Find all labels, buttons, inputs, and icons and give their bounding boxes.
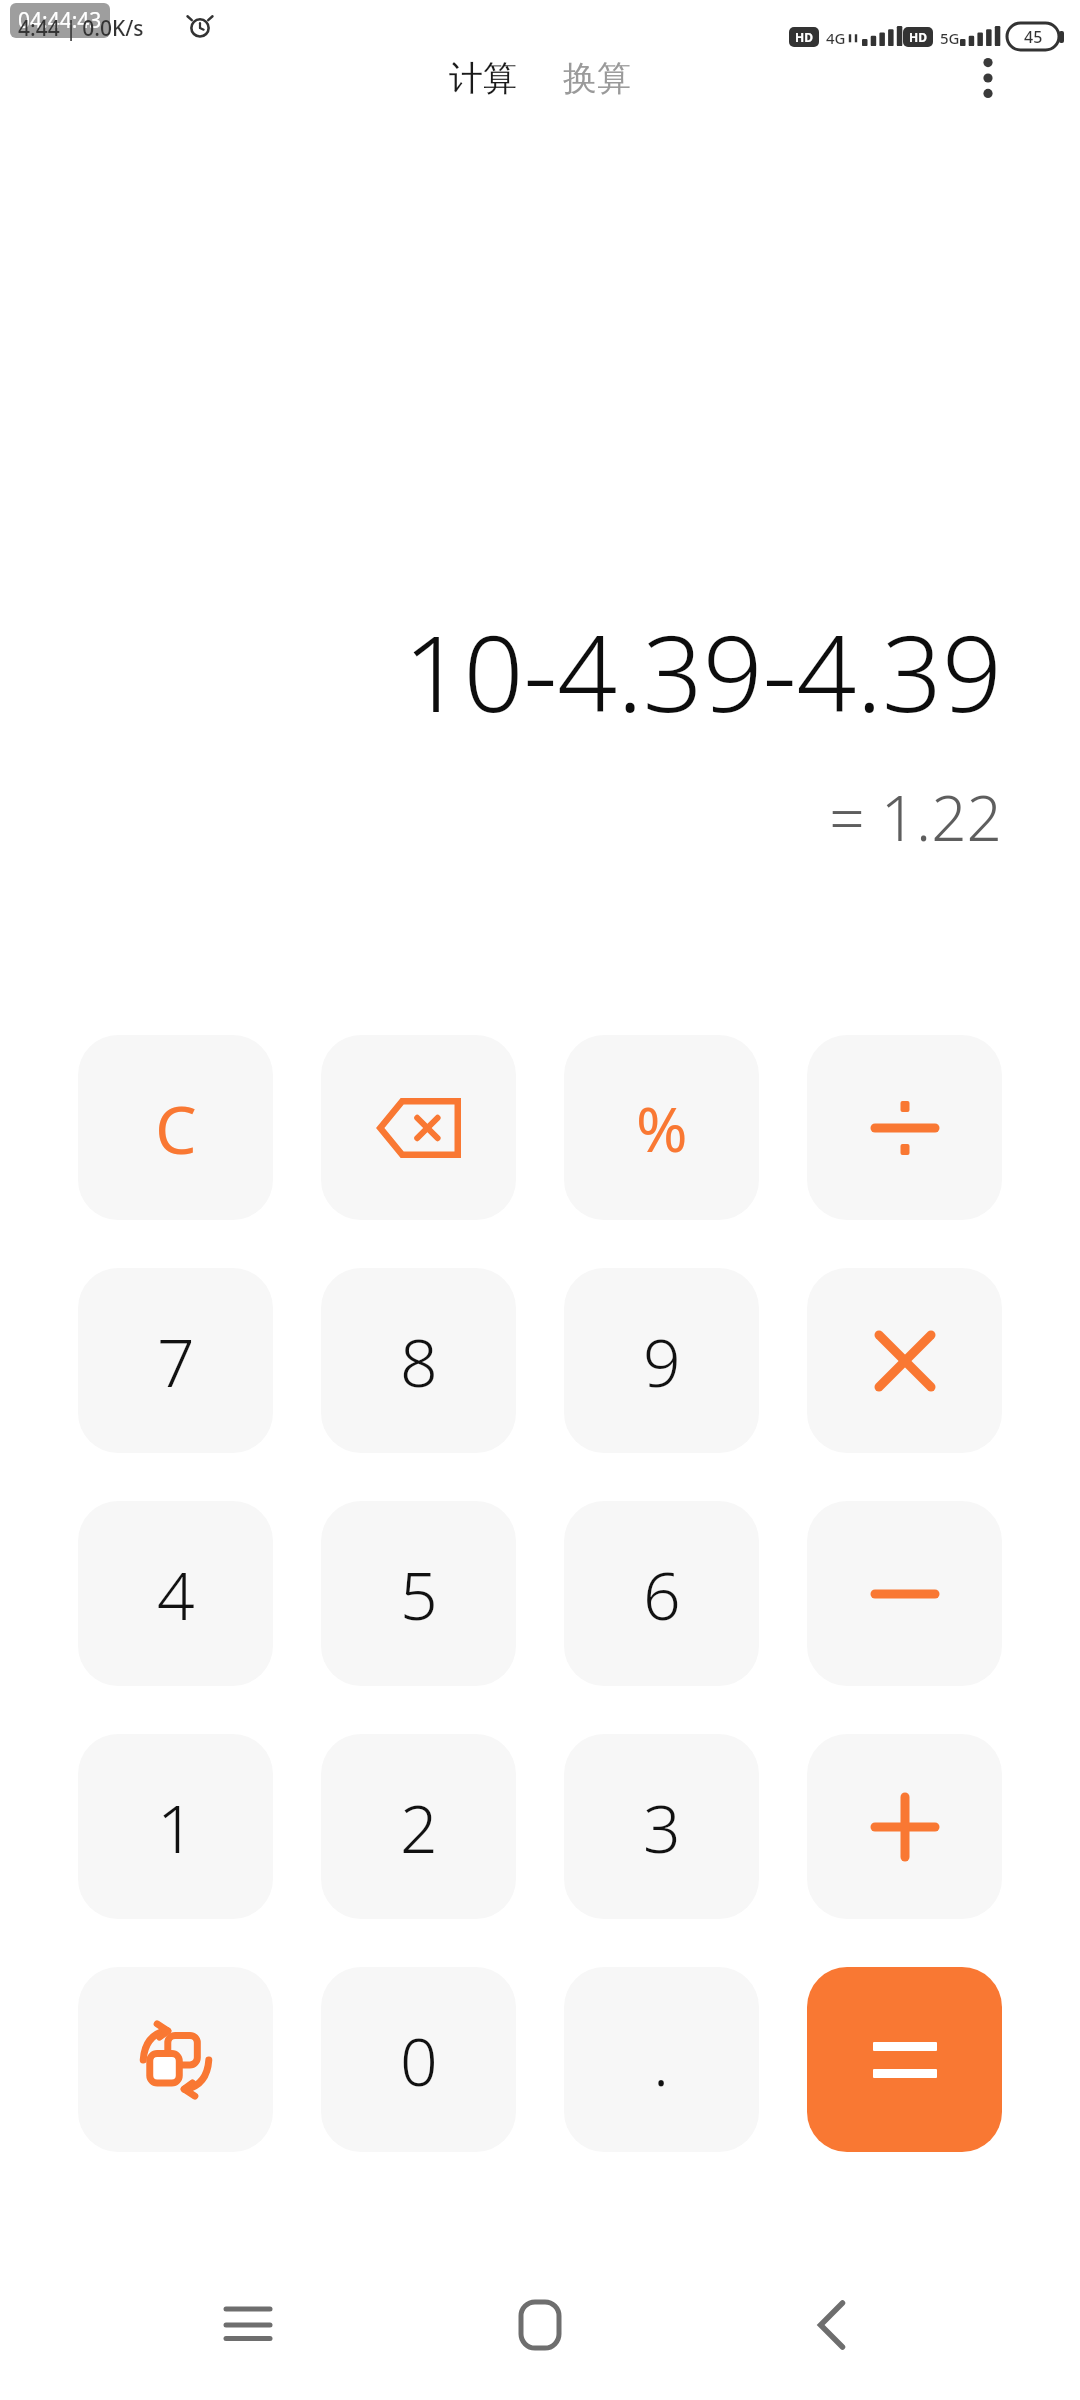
button[interactable]: More options — [958, 48, 1018, 108]
staticText: 4G — [826, 28, 846, 48]
staticText: 4 — [157, 1549, 195, 1639]
button[interactable]: Convert — [78, 1967, 273, 2152]
button[interactable]: 3 — [564, 1734, 759, 1919]
staticText: 计算 — [449, 57, 517, 100]
staticText: 9 — [643, 1316, 681, 1406]
staticText: 10-4.39-4.39 — [403, 600, 1002, 743]
staticText: 8 — [400, 1316, 438, 1406]
staticText: 3 — [643, 1782, 681, 1872]
button[interactable]: 6 — [564, 1501, 759, 1686]
button[interactable]: 计算 — [439, 51, 527, 106]
staticText: 2 — [400, 1782, 438, 1872]
button[interactable]: 9 — [564, 1268, 759, 1453]
button[interactable]: Equals — [807, 1967, 1002, 2152]
button[interactable]: 0 — [321, 1967, 516, 2152]
staticText: % — [636, 1086, 688, 1170]
button[interactable]: 2 — [321, 1734, 516, 1919]
button[interactable]: 5 — [321, 1501, 516, 1686]
staticText: HD — [909, 29, 927, 45]
button[interactable] — [807, 1268, 1002, 1453]
button[interactable]: . — [564, 1967, 759, 2152]
staticText: C — [155, 1083, 197, 1173]
staticText: 1 — [157, 1782, 195, 1872]
staticText: = 1.22 — [829, 775, 1002, 859]
button[interactable]: Back — [784, 2277, 880, 2373]
button[interactable]: Home — [492, 2277, 588, 2373]
staticText: 45 — [1024, 26, 1043, 48]
button[interactable] — [807, 1734, 1002, 1919]
button[interactable]: C — [78, 1035, 273, 1220]
button[interactable]: 换算 — [553, 51, 641, 106]
staticText: 0 — [400, 2015, 438, 2105]
button[interactable]: % — [564, 1035, 759, 1220]
staticText: 7 — [157, 1316, 195, 1406]
staticText: 4:44 | 0.0K/s — [18, 14, 144, 43]
staticText: . — [653, 2015, 670, 2105]
staticText: 5G — [940, 28, 960, 48]
button[interactable] — [807, 1501, 1002, 1686]
staticText: 04:44:43 — [18, 6, 102, 35]
staticText: 换算 — [563, 57, 631, 100]
staticText: 6 — [643, 1549, 681, 1639]
staticText: HD — [795, 29, 813, 45]
button[interactable]: Recents — [200, 2277, 296, 2373]
staticText: 5 — [400, 1549, 438, 1639]
button[interactable]: 4 — [78, 1501, 273, 1686]
button[interactable]: 1 — [78, 1734, 273, 1919]
button[interactable]: Backspace — [321, 1035, 516, 1220]
button[interactable]: 7 — [78, 1268, 273, 1453]
button[interactable]: 8 — [321, 1268, 516, 1453]
button[interactable] — [807, 1035, 1002, 1220]
